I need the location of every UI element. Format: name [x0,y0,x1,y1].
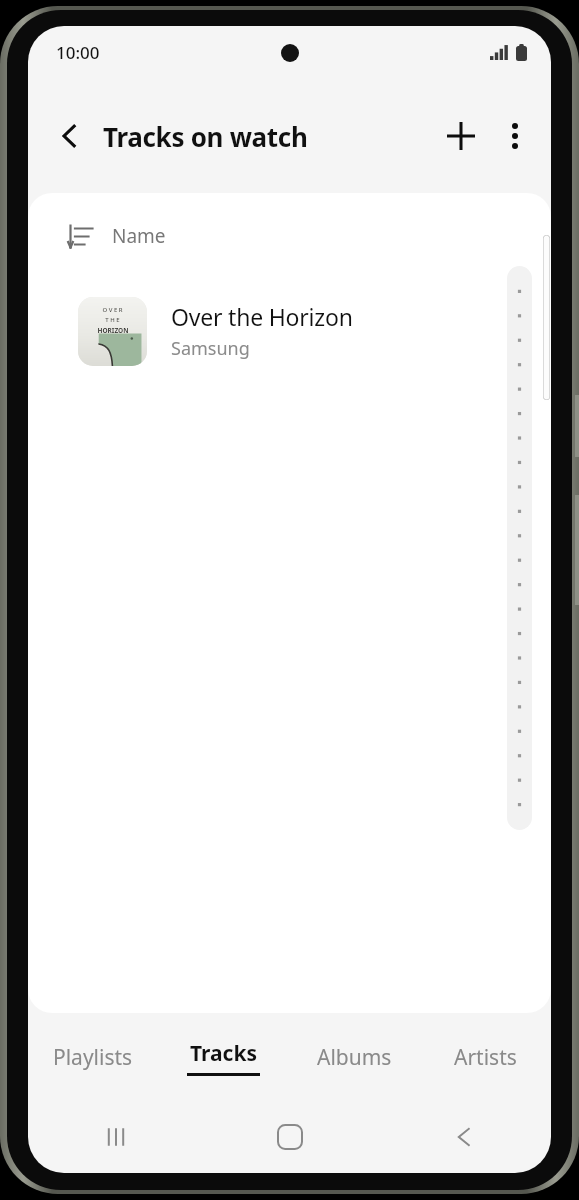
button[interactable]: Alphabet index [507,266,532,830]
button[interactable]: Back [377,1101,551,1173]
button[interactable]: Name [28,193,551,279]
staticText: Playlists [53,1043,133,1072]
button[interactable]: Add [433,108,489,164]
staticText: Over the Horizon [171,301,353,332]
button[interactable]: O V E R [28,279,551,383]
staticText: Name [112,223,166,249]
button[interactable]: Tracks [158,1013,289,1101]
button[interactable]: Playlists [28,1013,158,1101]
staticText: HORIZON [97,326,129,335]
button[interactable]: Home [203,1101,377,1173]
staticText: T H E [105,316,120,324]
staticText: Artists [454,1043,517,1072]
button[interactable]: Recent apps [28,1101,203,1173]
staticText: Tracks [190,1039,258,1068]
button[interactable]: More options [489,110,541,162]
staticText: 10:00 [56,41,100,64]
staticText: O V E R [102,306,123,314]
staticText: Tracks on watch [103,119,308,154]
button[interactable]: Albums [289,1013,420,1101]
button[interactable]: Back [42,108,98,164]
staticText: Samsung [171,336,250,361]
staticText: Albums [317,1043,392,1072]
button[interactable]: Artists [420,1013,551,1101]
